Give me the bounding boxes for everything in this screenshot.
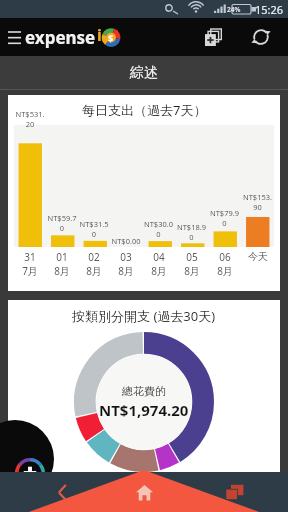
staticText: NT$153.90 xyxy=(241,192,274,212)
button[interactable]: Back xyxy=(44,474,80,510)
staticText: $ xyxy=(108,32,114,44)
staticText: 8月 xyxy=(184,264,200,278)
staticText: 8月 xyxy=(217,264,233,278)
button[interactable]: Menu xyxy=(3,26,25,48)
staticText: 總花費的 xyxy=(122,384,166,398)
button[interactable]: Home xyxy=(122,472,166,512)
staticText: 綜述 xyxy=(130,64,158,82)
staticText: 8月 xyxy=(118,264,134,278)
button[interactable]: 按類別分開支 (過去30天) xyxy=(8,300,280,472)
staticText: 03 xyxy=(120,250,132,264)
staticText: 24% xyxy=(227,5,241,14)
staticText: expense xyxy=(25,26,96,49)
staticText: NT$18.90 xyxy=(175,222,208,242)
staticText: 31 xyxy=(24,250,36,264)
button[interactable]: 每日支出（過去7天） xyxy=(8,95,280,291)
staticText: 04 xyxy=(153,250,165,264)
staticText: 7月 xyxy=(22,264,38,278)
staticText: 8月 xyxy=(151,264,167,278)
staticText: NT$1,974.20 xyxy=(99,400,189,420)
staticText: NT$59.70 xyxy=(46,213,78,233)
button[interactable]: Add expense xyxy=(196,20,230,54)
staticText: 15:26 xyxy=(255,2,284,17)
button[interactable]: Records xyxy=(216,473,254,511)
staticText: 05 xyxy=(186,250,198,264)
staticText: NT$79.90 xyxy=(208,208,241,228)
staticText: 01 xyxy=(56,250,68,264)
staticText: NT$0.00 xyxy=(111,236,141,246)
staticText: 8月 xyxy=(86,264,102,278)
button[interactable]: Add xyxy=(0,420,54,498)
button[interactable]: Refresh xyxy=(244,20,278,54)
staticText: 今天 xyxy=(248,250,268,263)
staticText: NT$31.50 xyxy=(78,219,110,239)
staticText: 按類別分開支 (過去30天) xyxy=(72,307,216,325)
staticText: i xyxy=(97,24,102,46)
staticText: 每日支出（過去7天） xyxy=(82,101,207,119)
staticText: 06 xyxy=(219,250,231,264)
staticText: NT$30.00 xyxy=(142,219,175,239)
staticText: 02 xyxy=(88,250,100,264)
staticText: 8月 xyxy=(54,264,70,278)
staticText: NT$531.20 xyxy=(14,109,46,129)
